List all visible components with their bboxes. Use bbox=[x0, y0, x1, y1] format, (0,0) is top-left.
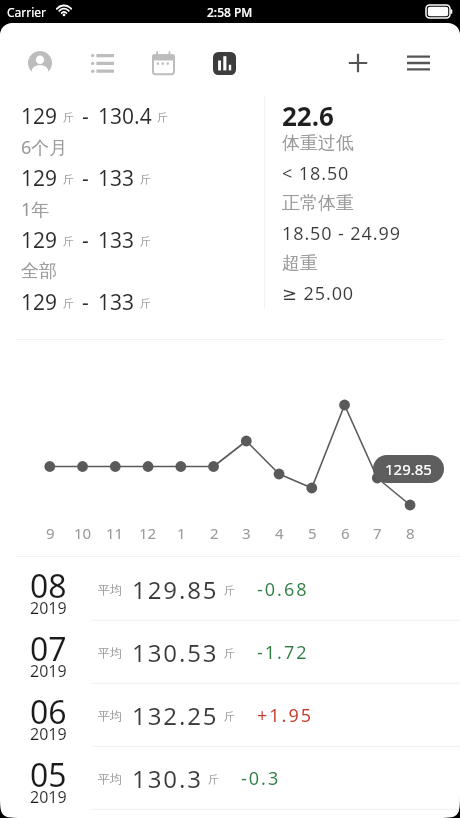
button[interactable]: 06 bbox=[0, 684, 460, 747]
staticText: - bbox=[82, 226, 89, 255]
staticText: 07 bbox=[30, 627, 67, 671]
staticText: 4 bbox=[275, 523, 284, 543]
staticText: 129 bbox=[21, 288, 58, 317]
staticText: 2:58 PM bbox=[207, 4, 253, 20]
staticText: 129 bbox=[21, 226, 58, 255]
staticText: 平均 bbox=[98, 708, 122, 723]
staticText: 129.85 bbox=[132, 573, 219, 606]
staticText: -0.3 bbox=[241, 766, 281, 791]
staticText: 130.3 bbox=[132, 762, 203, 795]
staticText: - bbox=[82, 102, 89, 131]
button[interactable]: Calendar bbox=[140, 38, 186, 84]
staticText: 18.50 - 24.99 bbox=[282, 221, 401, 246]
staticText: 斤 bbox=[224, 583, 235, 597]
staticText: 斤 bbox=[140, 172, 151, 186]
staticText: 斤 bbox=[224, 646, 235, 660]
staticText: 1年 bbox=[21, 197, 50, 222]
staticText: - bbox=[82, 288, 89, 317]
staticText: 平均 bbox=[98, 645, 122, 660]
button[interactable]: 08 bbox=[0, 558, 460, 621]
staticText: 斤 bbox=[224, 709, 235, 723]
staticText: 斤 bbox=[157, 110, 168, 124]
staticText: 2019 bbox=[30, 786, 67, 808]
staticText: 12 bbox=[139, 523, 157, 543]
staticText: 2019 bbox=[30, 660, 67, 682]
staticText: Carrier bbox=[7, 4, 47, 20]
staticText: 斤 bbox=[63, 234, 74, 248]
staticText: -1.72 bbox=[257, 640, 309, 665]
staticText: 3 bbox=[242, 523, 251, 543]
staticText: 10 bbox=[74, 523, 92, 543]
staticText: 平均 bbox=[98, 771, 122, 786]
staticText: 6个月 bbox=[21, 135, 68, 160]
button[interactable]: Add entry bbox=[335, 40, 381, 86]
staticText: -0.68 bbox=[257, 577, 309, 602]
staticText: 8 bbox=[406, 523, 415, 543]
staticText: 5 bbox=[308, 523, 317, 543]
staticText: 130.53 bbox=[132, 636, 219, 669]
staticText: 2019 bbox=[30, 723, 67, 745]
button[interactable]: List bbox=[79, 40, 125, 86]
staticText: < 18.50 bbox=[282, 161, 350, 186]
staticText: 7 bbox=[373, 523, 382, 543]
staticText: 133 bbox=[98, 164, 135, 193]
staticText: 体重过低 bbox=[282, 132, 354, 155]
staticText: 132.25 bbox=[132, 699, 219, 732]
staticText: 斤 bbox=[63, 172, 74, 186]
staticText: 斤 bbox=[63, 296, 74, 310]
staticText: ≥ 25.00 bbox=[282, 281, 355, 306]
staticText: 斤 bbox=[208, 772, 219, 786]
button[interactable]: 05 bbox=[0, 747, 460, 810]
staticText: 1 bbox=[177, 523, 186, 543]
staticText: 平均 bbox=[98, 582, 122, 597]
button[interactable]: Statistics bbox=[201, 40, 247, 86]
staticText: 斤 bbox=[140, 296, 151, 310]
staticText: 2 bbox=[210, 523, 219, 543]
staticText: 11 bbox=[106, 523, 124, 543]
staticText: 斤 bbox=[140, 234, 151, 248]
staticText: 129 bbox=[21, 102, 58, 131]
staticText: 05 bbox=[30, 753, 67, 797]
button[interactable]: 07 bbox=[0, 621, 460, 684]
staticText: 正常体重 bbox=[282, 192, 354, 215]
staticText: 133 bbox=[98, 288, 135, 317]
staticText: 06 bbox=[30, 690, 67, 734]
staticText: 130.4 bbox=[98, 102, 152, 131]
staticText: 129.85 bbox=[385, 459, 432, 479]
staticText: - bbox=[82, 164, 89, 193]
staticText: 2019 bbox=[30, 597, 67, 619]
staticText: 129 bbox=[21, 164, 58, 193]
staticText: +1.95 bbox=[257, 703, 314, 728]
staticText: 6 bbox=[341, 523, 350, 543]
staticText: 全部 bbox=[21, 260, 57, 283]
staticText: 9 bbox=[46, 523, 55, 543]
button[interactable]: Menu bbox=[395, 40, 441, 86]
button[interactable]: Profile bbox=[17, 40, 63, 86]
staticText: 133 bbox=[98, 226, 135, 255]
staticText: 08 bbox=[30, 564, 67, 608]
staticText: 超重 bbox=[282, 252, 318, 275]
staticText: 22.6 bbox=[282, 98, 334, 128]
staticText: 斤 bbox=[63, 110, 74, 124]
